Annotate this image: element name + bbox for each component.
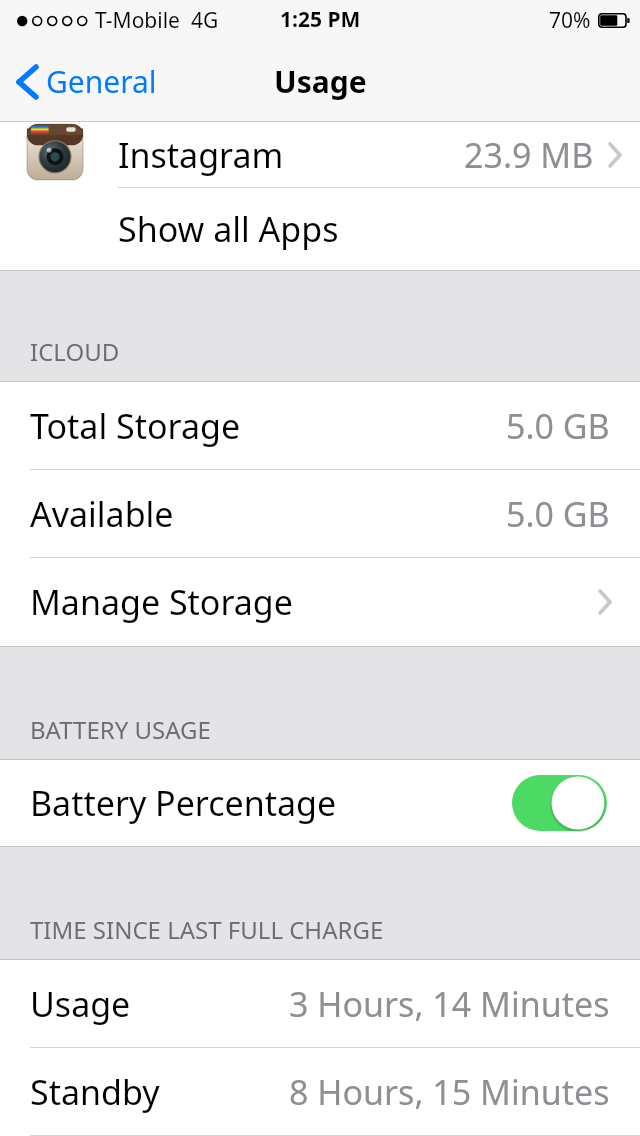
button[interactable]: Battery Percentage toggle, on: [512, 775, 607, 831]
button[interactable]: Total Storage: [0, 382, 640, 470]
button[interactable]: Battery Percentage: [0, 760, 640, 846]
staticText: BATTERY USAGE: [30, 713, 211, 746]
button[interactable]: Show all Apps: [0, 188, 640, 270]
staticText: Usage: [30, 981, 131, 1027]
staticText: Manage Storage: [30, 579, 293, 625]
staticText: Standby: [30, 1069, 160, 1115]
staticText: ICLOUD: [30, 335, 120, 368]
staticText: Show all Apps: [118, 206, 339, 252]
button[interactable]: Manage Storage: [0, 558, 640, 646]
staticText: 5.0 GB: [506, 403, 610, 449]
staticText: 23.9 MB: [464, 132, 594, 178]
staticText: Usage: [274, 61, 367, 102]
staticText: 4G: [191, 6, 219, 35]
staticText: Total Storage: [30, 403, 241, 449]
staticText: Available: [30, 491, 174, 537]
button[interactable]: Usage: [0, 960, 640, 1048]
staticText: Instagram: [118, 132, 284, 178]
staticText: T-Mobile: [95, 6, 180, 35]
button[interactable]: Available: [0, 470, 640, 558]
staticText: 70%: [549, 6, 591, 35]
button[interactable]: Instagram: [0, 122, 640, 188]
staticText: 1:25 PM: [280, 5, 361, 34]
staticText: TIME SINCE LAST FULL CHARGE: [30, 913, 384, 946]
staticText: Battery Percentage: [30, 780, 337, 826]
button[interactable]: Standby: [0, 1048, 640, 1136]
staticText: 8 Hours, 15 Minutes: [289, 1069, 610, 1115]
staticText: 5.0 GB: [506, 491, 610, 537]
button[interactable]: General: [10, 55, 163, 108]
staticText: 3 Hours, 14 Minutes: [289, 981, 610, 1027]
staticText: General: [46, 61, 157, 102]
